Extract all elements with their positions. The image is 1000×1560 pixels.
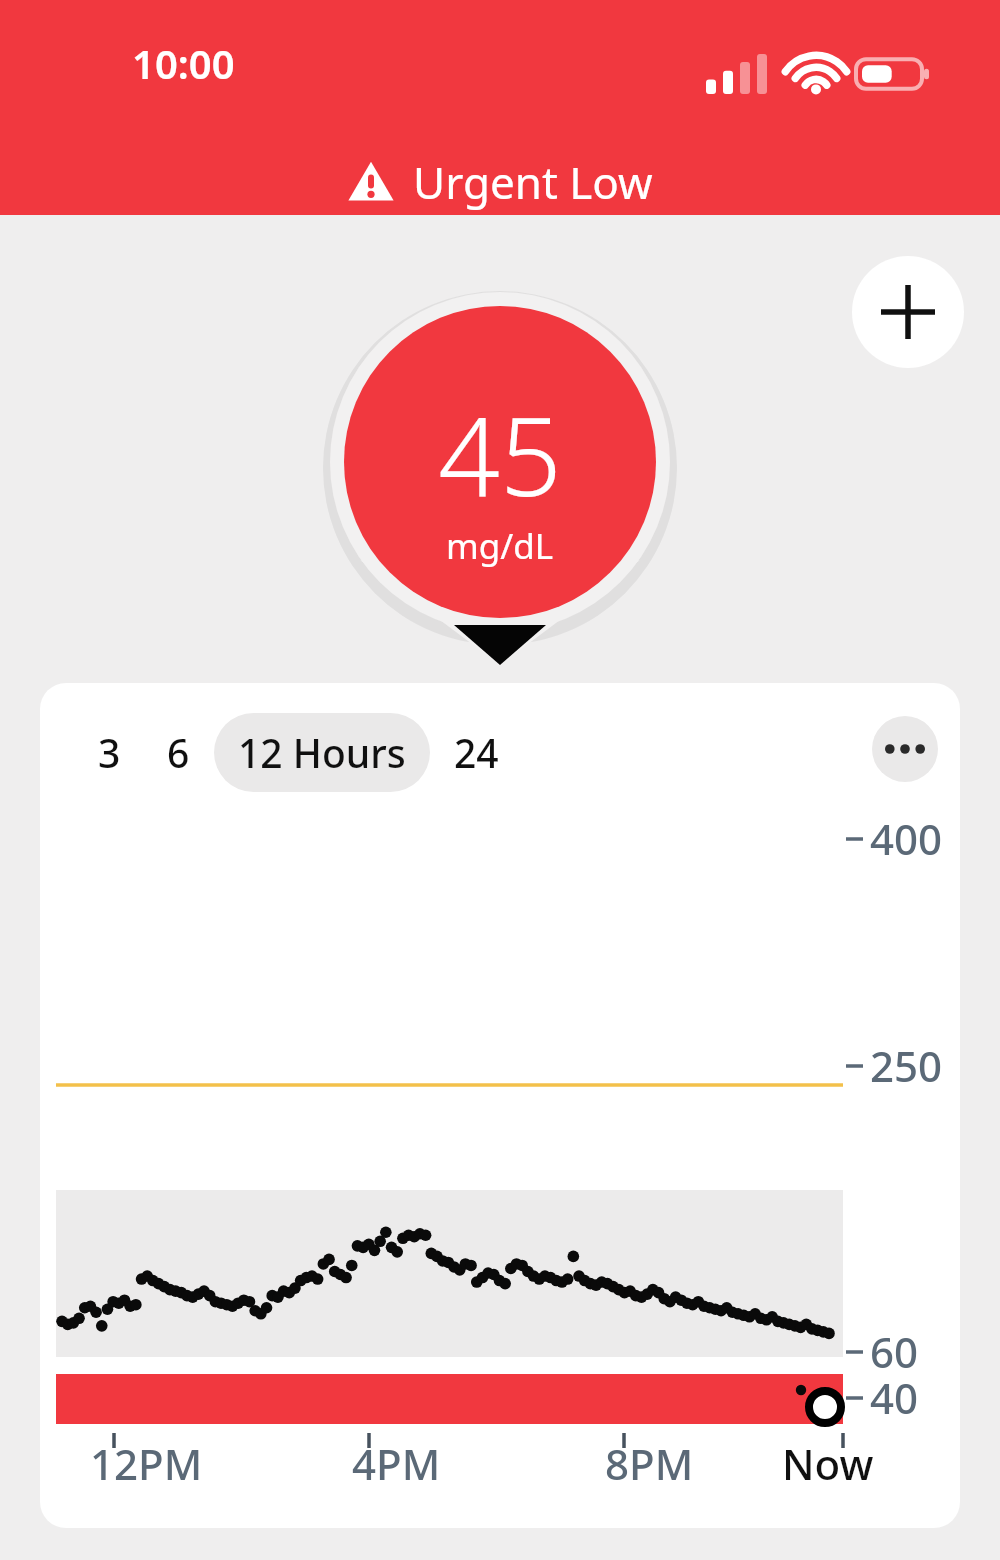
staticText: Urgent Low	[413, 152, 653, 212]
staticText: 45	[438, 381, 562, 528]
staticText: 4PM	[352, 1435, 441, 1492]
staticText: 12 Hours	[238, 726, 406, 779]
button[interactable]: 6	[157, 713, 200, 792]
button[interactable]: 24	[444, 713, 509, 792]
button[interactable]: Add event	[852, 256, 964, 368]
staticText: 8PM	[605, 1435, 694, 1492]
staticText: Now	[782, 1435, 874, 1492]
staticText: 40	[870, 1369, 919, 1426]
button[interactable]: 3	[88, 713, 131, 792]
button[interactable]: Current glucose 45 mg/dL, falling fast	[320, 285, 680, 680]
button[interactable]: 12 Hours	[214, 713, 430, 792]
button[interactable]: More options	[872, 716, 938, 782]
staticText: 250	[870, 1037, 943, 1094]
staticText: 400	[870, 810, 943, 867]
staticText: 6	[167, 726, 190, 779]
staticText: 24	[454, 726, 499, 779]
staticText: 12PM	[90, 1435, 203, 1492]
staticText: 3	[98, 726, 121, 779]
staticText: 10:00	[132, 36, 235, 90]
staticText: 60	[870, 1323, 919, 1380]
staticText: mg/dL	[446, 522, 554, 570]
